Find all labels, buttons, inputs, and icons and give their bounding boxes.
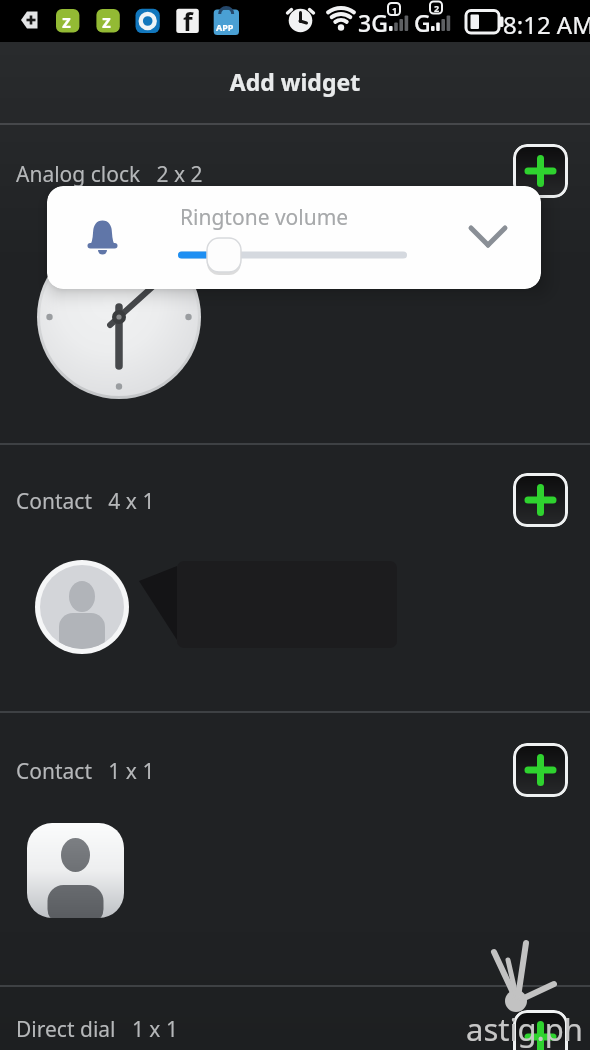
staticText: z	[102, 9, 111, 34]
staticText: Direct dial 1 x 1	[16, 1015, 178, 1044]
button[interactable]	[513, 743, 568, 797]
button[interactable]	[513, 473, 568, 527]
staticText: G	[414, 7, 431, 38]
staticText: Analog clock 2 x 2	[16, 160, 203, 189]
staticText: 8:12 AM	[503, 8, 590, 41]
staticText: 1	[392, 4, 398, 16]
staticText: Contact 1 x 1	[16, 757, 155, 786]
staticText: z	[62, 9, 71, 34]
staticText: Contact 4 x 1	[16, 487, 155, 516]
button[interactable]	[27, 823, 124, 918]
staticText: 3G	[358, 7, 388, 38]
button[interactable]	[451, 208, 525, 268]
button[interactable]	[513, 144, 568, 198]
button[interactable]	[513, 1010, 568, 1050]
staticText: f	[183, 4, 193, 38]
staticText: Add widget	[0, 66, 590, 97]
button[interactable]	[30, 555, 410, 655]
staticText: astig.ph	[466, 1008, 584, 1050]
staticText: APP	[216, 21, 234, 33]
button[interactable]	[37, 235, 201, 399]
staticText: 2	[434, 2, 440, 14]
staticText: Ringtone volume	[180, 203, 349, 232]
